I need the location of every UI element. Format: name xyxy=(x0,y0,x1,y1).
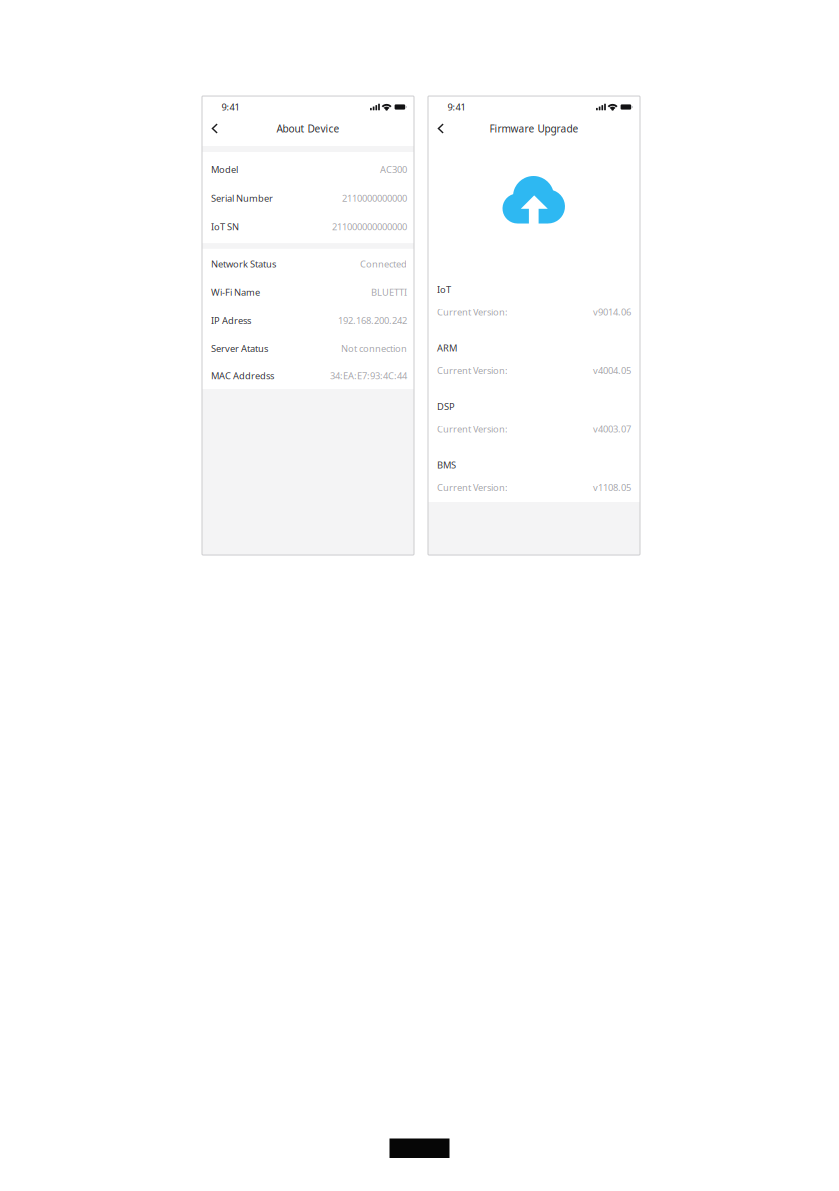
button[interactable]: BMS xyxy=(428,459,640,493)
button[interactable]: IoT xyxy=(428,284,640,317)
staticText: 9:41 xyxy=(221,101,239,113)
staticText: BLUETTI xyxy=(371,286,407,298)
staticText: 34:EA:E7:93:4C:44 xyxy=(330,369,407,382)
button[interactable]: Network Status xyxy=(202,250,414,278)
staticText: Current Version: xyxy=(437,306,508,318)
staticText: About Device xyxy=(276,122,339,135)
staticText: Connected xyxy=(360,258,407,270)
staticText: v4003.07 xyxy=(593,423,631,435)
staticText: AC300 xyxy=(380,163,407,176)
staticText: IoT SN xyxy=(211,221,239,233)
staticText: IoT xyxy=(437,283,451,296)
button[interactable]: Server Atatus xyxy=(202,334,414,363)
staticText: DSP xyxy=(437,400,455,413)
button[interactable]: Back xyxy=(205,117,223,139)
staticText: Firmware Upgrade xyxy=(489,122,578,135)
staticText: Wi-Fi Name xyxy=(211,286,260,298)
staticText: ARM xyxy=(437,342,457,354)
staticText: Current Version: xyxy=(437,481,508,494)
staticText: Current Version: xyxy=(437,364,508,377)
staticText: Current Version: xyxy=(437,423,508,435)
staticText: Network Status xyxy=(211,258,276,270)
button[interactable]: Serial Number xyxy=(202,184,414,212)
button[interactable]: Wi-Fi Name xyxy=(202,278,414,306)
button[interactable]: Back xyxy=(431,117,449,139)
button[interactable]: MAC Addredss xyxy=(202,363,414,389)
staticText: Model xyxy=(211,163,238,176)
staticText: 211000000000000 xyxy=(332,221,407,233)
staticText: MAC Addredss xyxy=(211,369,274,382)
staticText: v4004.05 xyxy=(593,364,631,377)
button[interactable]: IP Adress xyxy=(202,306,414,334)
staticText: v9014.06 xyxy=(593,306,631,318)
staticText: 192.168.200.242 xyxy=(338,314,407,326)
button[interactable]: IoT SN xyxy=(202,212,414,241)
staticText: 9:41 xyxy=(447,101,465,113)
staticText: 2110000000000 xyxy=(342,192,407,204)
staticText: Not connection xyxy=(341,342,407,355)
button[interactable]: DSP xyxy=(428,401,640,434)
staticText: Server Atatus xyxy=(211,342,268,355)
staticText: v1108.05 xyxy=(593,481,631,494)
staticText: Serial Number xyxy=(211,192,273,204)
button[interactable]: Model xyxy=(202,155,414,184)
staticText: IP Adress xyxy=(211,314,251,326)
staticText: BMS xyxy=(437,459,456,471)
button[interactable]: ARM xyxy=(428,342,640,376)
